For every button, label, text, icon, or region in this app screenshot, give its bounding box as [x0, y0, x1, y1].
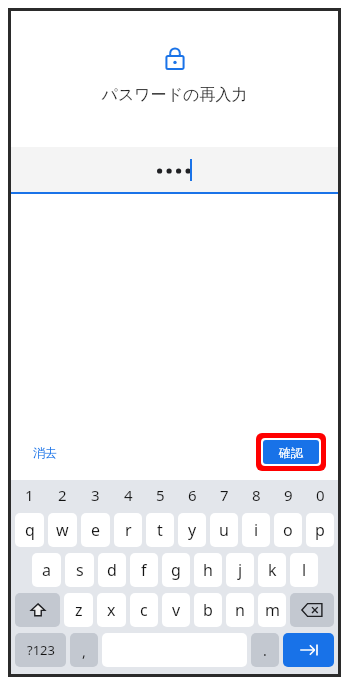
staticText: t: [157, 519, 163, 541]
button[interactable]: 6: [176, 480, 208, 510]
button[interactable]: d: [98, 553, 126, 587]
button[interactable]: ,: [70, 633, 98, 667]
staticText: 8: [252, 485, 261, 505]
staticText: 消去: [33, 445, 57, 460]
staticText: o: [283, 519, 293, 541]
button[interactable]: Next: [283, 633, 334, 667]
button[interactable]: x: [97, 593, 126, 627]
button[interactable]: ?123: [15, 633, 66, 667]
button[interactable]: q: [15, 513, 44, 547]
button[interactable]: f: [130, 553, 158, 587]
button[interactable]: z: [64, 593, 93, 627]
button[interactable]: t: [146, 513, 174, 547]
staticText: n: [235, 599, 245, 621]
button[interactable]: 確認: [263, 440, 319, 464]
staticText: u: [219, 519, 229, 541]
staticText: v: [172, 599, 181, 621]
button[interactable]: s: [65, 553, 94, 587]
staticText: 0: [316, 485, 325, 505]
button[interactable]: .: [251, 633, 279, 667]
staticText: y: [188, 519, 197, 541]
button[interactable]: v: [162, 593, 190, 627]
button[interactable]: 8: [240, 480, 272, 510]
staticText: s: [76, 559, 84, 581]
button[interactable]: Shift: [15, 593, 60, 627]
staticText: a: [42, 559, 51, 581]
button[interactable]: n: [226, 593, 254, 627]
staticText: x: [107, 599, 116, 621]
button[interactable]: w: [48, 513, 77, 547]
button[interactable]: u: [210, 513, 238, 547]
staticText: 確認: [279, 445, 303, 460]
button[interactable]: 9: [272, 480, 304, 510]
staticText: w: [56, 519, 69, 541]
staticText: b: [203, 599, 213, 621]
staticText: 2: [58, 485, 67, 505]
staticText: e: [91, 519, 101, 541]
button[interactable]: o: [274, 513, 302, 547]
button[interactable]: Backspace: [290, 593, 334, 627]
staticText: h: [203, 559, 213, 581]
button[interactable]: 0: [304, 480, 336, 510]
button[interactable]: e: [81, 513, 110, 547]
staticText: .: [263, 641, 267, 660]
button[interactable]: y: [178, 513, 206, 547]
staticText: パスワードの再入力: [11, 85, 338, 105]
staticText: ,: [82, 642, 86, 661]
button[interactable]: b: [194, 593, 222, 627]
staticText: g: [171, 559, 181, 581]
staticText: l: [302, 559, 307, 581]
button[interactable]: j: [226, 553, 254, 587]
button[interactable]: 消去: [29, 441, 61, 464]
button[interactable]: l: [290, 553, 318, 587]
button[interactable]: p: [306, 513, 334, 547]
button[interactable]: r: [114, 513, 142, 547]
button[interactable]: 2: [46, 480, 79, 510]
button[interactable]: 5: [144, 480, 176, 510]
button[interactable]: a: [32, 553, 61, 587]
staticText: 5: [156, 485, 165, 505]
button[interactable]: m: [258, 593, 286, 627]
button[interactable]: [11, 147, 338, 192]
staticText: 3: [91, 485, 100, 505]
staticText: f: [141, 559, 147, 581]
button[interactable]: 3: [79, 480, 112, 510]
other: Lock: [162, 45, 188, 71]
staticText: 4: [124, 485, 133, 505]
button[interactable]: 7: [208, 480, 240, 510]
staticText: d: [107, 559, 117, 581]
staticText: q: [25, 519, 35, 541]
staticText: 1: [25, 485, 34, 505]
staticText: c: [140, 599, 148, 621]
button[interactable]: g: [162, 553, 190, 587]
button[interactable]: c: [130, 593, 158, 627]
button[interactable]: i: [242, 513, 270, 547]
staticText: ?123: [27, 641, 55, 659]
staticText: r: [125, 519, 132, 541]
staticText: 6: [188, 485, 197, 505]
staticText: m: [265, 599, 280, 621]
button[interactable]: k: [258, 553, 286, 587]
staticText: k: [268, 559, 277, 581]
staticText: i: [254, 519, 259, 541]
staticText: j: [238, 559, 243, 581]
staticText: p: [315, 519, 325, 541]
staticText: 9: [284, 485, 293, 505]
staticText: z: [75, 599, 83, 621]
staticText: 7: [220, 485, 229, 505]
button[interactable]: h: [194, 553, 222, 587]
button[interactable]: 4: [112, 480, 144, 510]
button[interactable]: 1: [13, 480, 46, 510]
